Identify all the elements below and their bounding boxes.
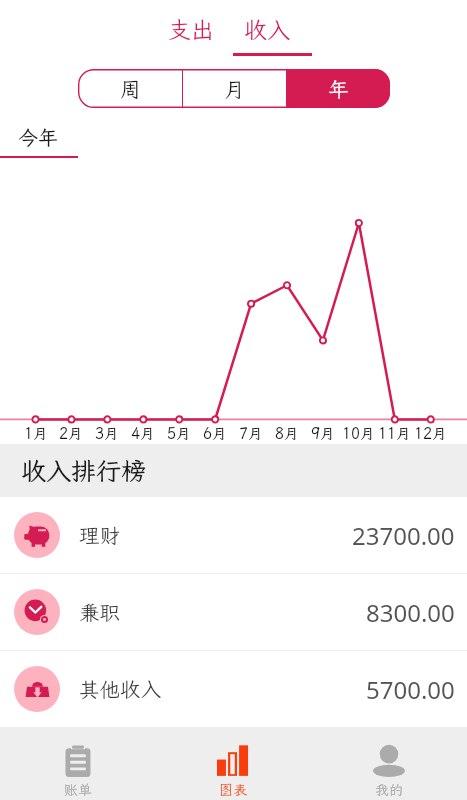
staticText: 8300.00 — [366, 596, 455, 629]
staticText: 2月 — [59, 424, 84, 444]
staticText: 5月 — [167, 424, 192, 444]
staticText: 支出 — [168, 14, 214, 44]
staticText: 23700.00 — [352, 519, 455, 552]
staticText: 其他收入 — [79, 676, 161, 703]
staticText: 10月 — [342, 424, 376, 444]
button[interactable]: 周 — [78, 69, 182, 108]
staticText: 收入 — [244, 14, 290, 44]
staticText: 6月 — [203, 424, 228, 444]
staticText: 我的 — [375, 781, 403, 799]
button[interactable]: 兼职 — [0, 574, 467, 650]
staticText: 3月 — [95, 424, 120, 444]
staticText: 理财 — [79, 522, 120, 549]
button[interactable]: 理财 — [0, 497, 467, 573]
staticText: 7月 — [239, 424, 264, 444]
staticText: 12月 — [414, 424, 448, 444]
staticText: 年 — [328, 75, 349, 103]
staticText: 5700.00 — [366, 673, 455, 706]
staticText: 4月 — [131, 424, 156, 444]
staticText: 周 — [120, 75, 141, 103]
button[interactable]: 我的 — [311, 727, 467, 800]
button[interactable]: 图表 — [155, 727, 311, 800]
button[interactable]: 年 — [287, 69, 390, 108]
button[interactable]: 今年 — [18, 124, 58, 150]
staticText: 8月 — [275, 424, 300, 444]
staticText: 账单 — [64, 781, 92, 799]
staticText: 兼职 — [79, 599, 120, 626]
staticText: 9月 — [311, 424, 336, 444]
button[interactable]: 月 — [183, 69, 286, 108]
button[interactable]: 其他收入 — [0, 651, 467, 727]
staticText: 图表 — [219, 781, 247, 799]
button[interactable]: 收入 — [242, 14, 292, 44]
staticText: 收入排行榜 — [21, 454, 147, 487]
button[interactable]: 账单 — [0, 727, 155, 800]
staticText: 月 — [224, 75, 245, 103]
staticText: 11月 — [378, 424, 412, 444]
staticText: 1月 — [24, 424, 49, 444]
button[interactable]: 支出 — [166, 14, 216, 44]
